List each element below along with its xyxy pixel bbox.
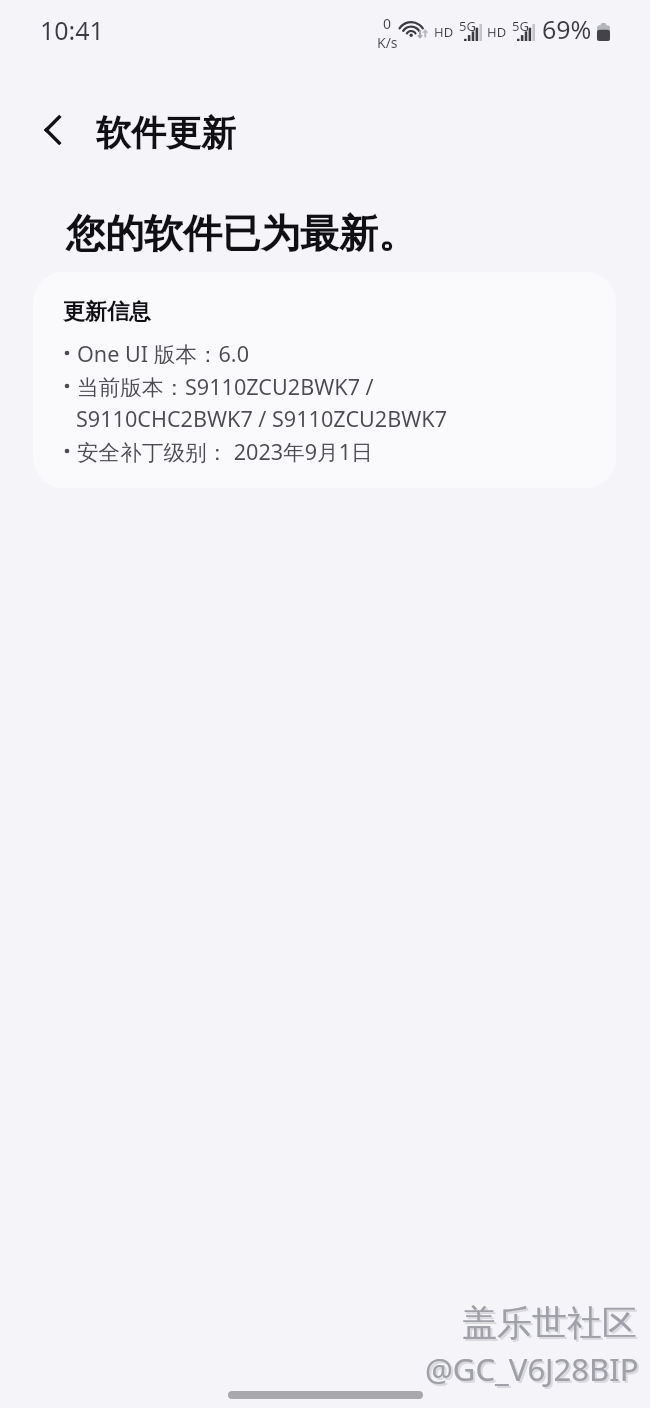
staticText: 更新信息 [63,298,151,326]
other: 5G signal [458,17,483,42]
staticText: 盖乐世社区 [462,1301,637,1345]
staticText: 5G [459,17,476,35]
staticText: 69% [542,12,592,46]
other: 5G signal [511,17,536,42]
staticText: 盖乐世社区 [464,1303,639,1347]
staticText: 您的软件已为最新。 [66,209,417,258]
staticText: HD [434,23,454,41]
staticText: @GC_V6J28BIP [427,1350,641,1392]
button[interactable]: Navigate up [25,102,81,158]
staticText: K/s [377,33,398,52]
other: Battery 69 percent [597,23,610,41]
staticText: 0 [383,14,392,33]
other: Wi-Fi connected [400,17,429,41]
staticText: S9110CHC2BWK7 / S9110ZCU2BWK7 [76,404,448,433]
staticText: 10:41 [40,13,104,47]
staticText: One UI 版本：6.0 [77,339,249,369]
staticText: 安全补丁级别： 2023年9月1日 [77,437,373,467]
staticText: 当前版本：S9110ZCU2BWK7 / [77,372,374,402]
staticText: @GC_V6J28BIP [425,1348,639,1390]
staticText: 软件更新 [96,111,236,155]
staticText: HD [487,23,507,41]
staticText: 5G [512,17,529,35]
